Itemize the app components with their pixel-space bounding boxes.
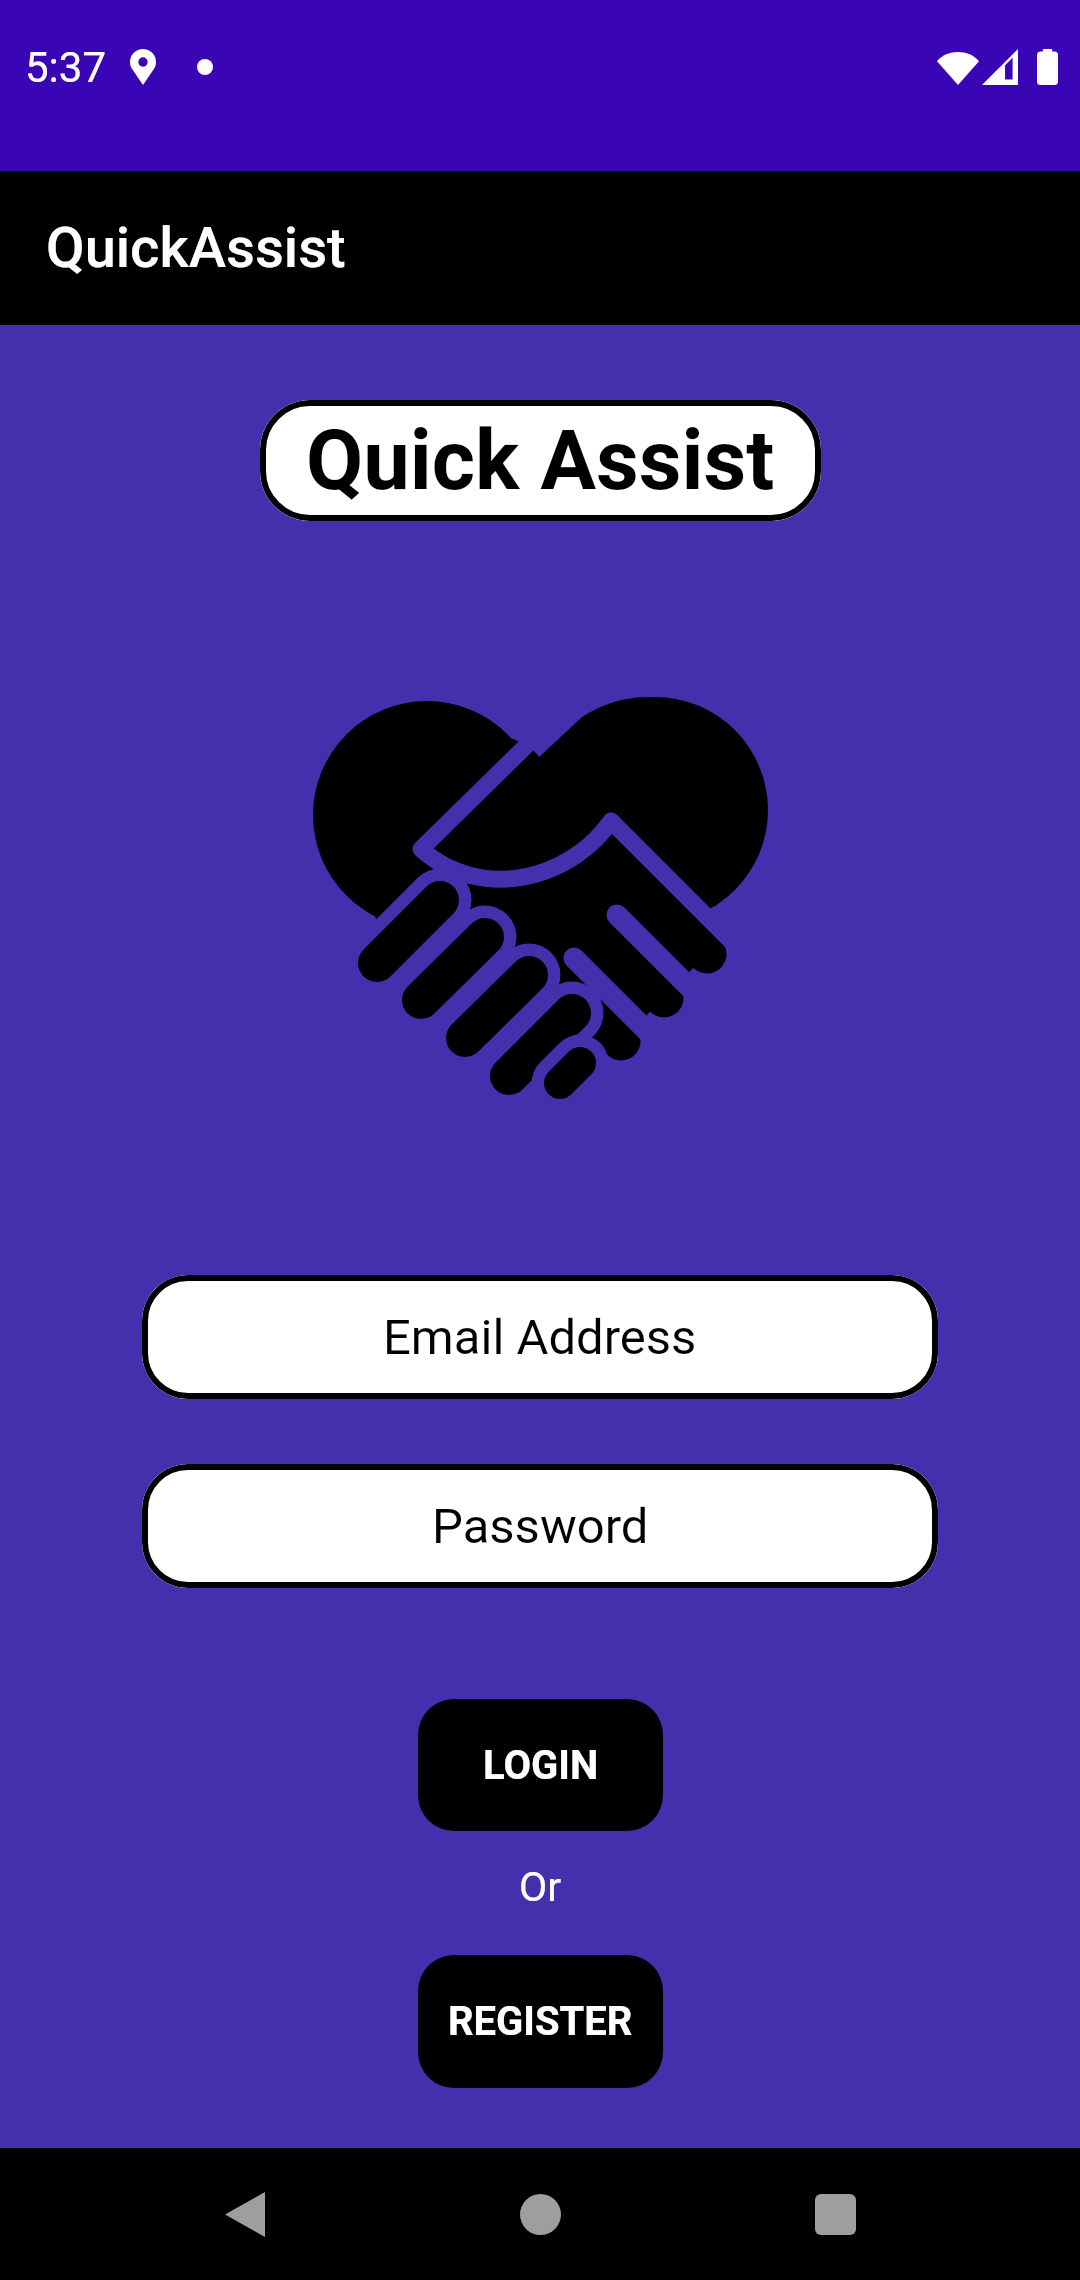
button[interactable]: LOGIN [418,1699,663,1831]
button[interactable]: REGISTER [418,1955,663,2088]
button[interactable]: Recent apps [785,2164,885,2264]
button[interactable]: Quick Assist [260,400,821,521]
staticText: Email Address [383,1309,697,1366]
staticText: LOGIN [483,1742,599,1789]
staticText: REGISTER [448,1998,633,2045]
staticText: Quick Assist [306,412,775,509]
staticText: QuickAssist [46,215,346,281]
button[interactable]: Back [195,2164,295,2264]
staticText: Password [432,1498,649,1555]
other: Quick Assist logo [310,696,770,1101]
button[interactable]: Email Address [142,1275,938,1399]
staticText: 5:37 [25,43,106,92]
button[interactable]: Password [142,1464,938,1588]
staticText: Or [519,1863,562,1911]
button[interactable]: Home [490,2164,590,2264]
